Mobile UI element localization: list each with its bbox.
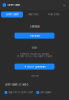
button[interactable]: Begin with Lorem ipsum xyxy=(4,91,33,94)
staticText: × xyxy=(63,3,65,7)
button[interactable]: ✦ xyxy=(14,64,54,70)
button[interactable]: Close xyxy=(61,2,66,7)
staticText: Real Data xyxy=(48,13,59,16)
staticText: Options xyxy=(30,74,38,77)
button[interactable]: Lorem ipsum xyxy=(1,11,23,17)
staticText: Lorem ipsum (Classic) xyxy=(4,83,28,86)
staticText: Lorem ipsum xyxy=(7,3,20,6)
staticText: Fake Data xyxy=(28,13,38,16)
staticText: of text to fill this layer's frame xyxy=(17,55,52,58)
staticText: Lorem ipsum xyxy=(5,13,18,16)
staticText: Generate xyxy=(29,34,39,37)
button[interactable]: Fake Data xyxy=(23,11,43,17)
staticText: Sentences xyxy=(29,25,39,28)
staticText: Begin with Lorem ipsum xyxy=(8,91,33,94)
staticText: Auto generate xyxy=(27,65,45,68)
button[interactable]: Auto update xyxy=(36,91,51,94)
button[interactable]: Generate xyxy=(14,33,54,39)
staticText: Generate the perfect amount xyxy=(20,53,49,55)
button[interactable]: Real Data xyxy=(43,11,64,17)
staticText: Auto update xyxy=(40,91,51,94)
staticText: ✦ xyxy=(24,65,26,68)
